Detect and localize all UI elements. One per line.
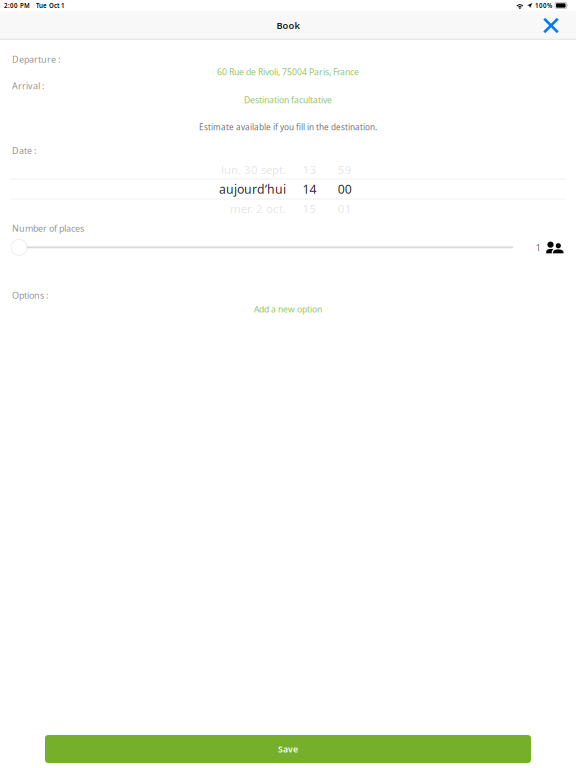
button[interactable]: 60 Rue de Rivoli, 75004 Paris, France xyxy=(0,65,576,80)
staticText: Book xyxy=(276,19,299,32)
staticText: 14 xyxy=(302,181,316,197)
button[interactable]: Save xyxy=(45,735,531,763)
staticText: 01 xyxy=(338,201,352,216)
staticText: Add a new option xyxy=(254,303,322,315)
staticText: Number of places xyxy=(12,222,84,234)
staticText: 00 xyxy=(338,181,352,197)
staticText: 2:00 PM xyxy=(4,1,30,10)
button[interactable]: Destination facultative xyxy=(0,92,576,108)
staticText: mer. 2 oct. xyxy=(230,201,286,216)
staticText: 1 xyxy=(535,241,540,254)
staticText: lun. 30 sept. xyxy=(221,162,286,177)
staticText: 15 xyxy=(302,201,316,216)
staticText: 100% xyxy=(535,1,552,10)
staticText: aujourd’hui xyxy=(219,181,286,197)
staticText: Date : xyxy=(12,144,36,157)
staticText: Save xyxy=(278,743,298,755)
button[interactable]: Add a new option xyxy=(0,301,576,317)
staticText: 60 Rue de Rivoli, 75004 Paris, France xyxy=(217,66,359,78)
staticText: 13 xyxy=(302,162,316,177)
staticText: Estimate available if you fill in the de… xyxy=(199,121,377,133)
staticText: Destination facultative xyxy=(244,94,332,106)
staticText: Arrival : xyxy=(12,80,44,92)
staticText: Tue Oct 1 xyxy=(36,1,65,10)
staticText: Departure : xyxy=(12,53,60,65)
staticText: Options : xyxy=(12,289,48,301)
button[interactable]: Close xyxy=(528,11,576,39)
staticText: 59 xyxy=(338,162,352,177)
